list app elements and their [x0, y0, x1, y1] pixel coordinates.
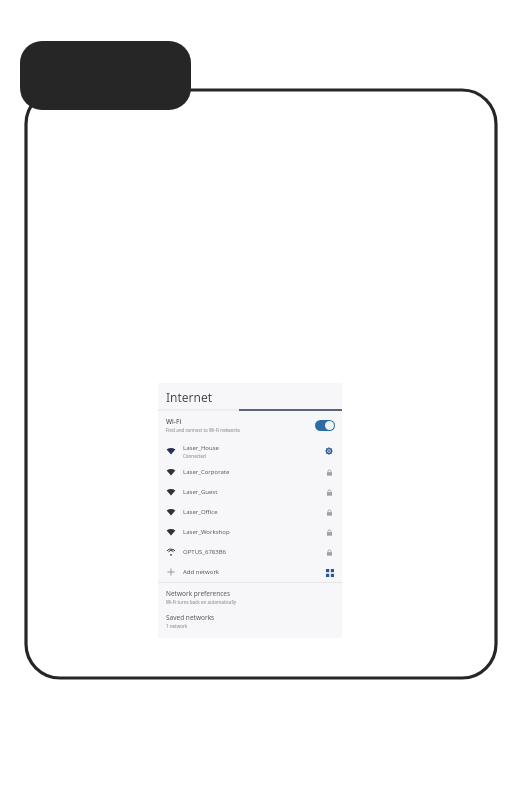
button[interactable]: Laser_Office	[158, 502, 342, 522]
staticText: Wi-Fi	[166, 417, 182, 426]
staticText: Laser_Guest	[183, 488, 218, 496]
button[interactable]: Laser_House	[158, 440, 342, 462]
staticText: Saved networks	[166, 613, 215, 622]
button[interactable]: Secured network	[323, 546, 335, 558]
staticText: Internet	[166, 389, 213, 405]
button[interactable]: Add network	[158, 562, 342, 582]
button[interactable]: Network settings	[323, 445, 335, 457]
button[interactable]: Wi-Fi	[158, 413, 342, 437]
staticText: Add network	[183, 568, 324, 576]
button[interactable]: Secured network	[323, 526, 335, 538]
staticText: 1 network	[166, 623, 188, 629]
button[interactable]: Secured network	[323, 486, 335, 498]
staticText: Laser_Office	[183, 508, 218, 516]
staticText: Find and connect to Wi-Fi networks	[166, 427, 240, 433]
button[interactable]: Laser_Guest	[158, 482, 342, 502]
button[interactable]: Laser_Corporate	[158, 462, 342, 482]
staticText: Wi-Fi turns back on automatically	[166, 599, 237, 605]
button[interactable]: OPTUS_6783B6	[158, 542, 342, 562]
button[interactable]: Saved networks	[158, 613, 342, 632]
staticText: Network preferences	[166, 589, 231, 598]
staticText: Laser_House	[183, 444, 219, 452]
button[interactable]: Laser_Workshop	[158, 522, 342, 542]
button[interactable]: Scan QR code	[324, 567, 335, 578]
button[interactable]: Secured network	[323, 506, 335, 518]
staticText: Laser_Workshop	[183, 528, 230, 536]
staticText: OPTUS_6783B6	[183, 548, 227, 556]
staticText: Connected	[183, 453, 206, 459]
button[interactable]: Network preferences	[158, 588, 342, 608]
button[interactable]: Wi-Fi toggle	[315, 420, 335, 431]
staticText: Laser_Corporate	[183, 468, 230, 476]
button[interactable]: Secured network	[323, 466, 335, 478]
